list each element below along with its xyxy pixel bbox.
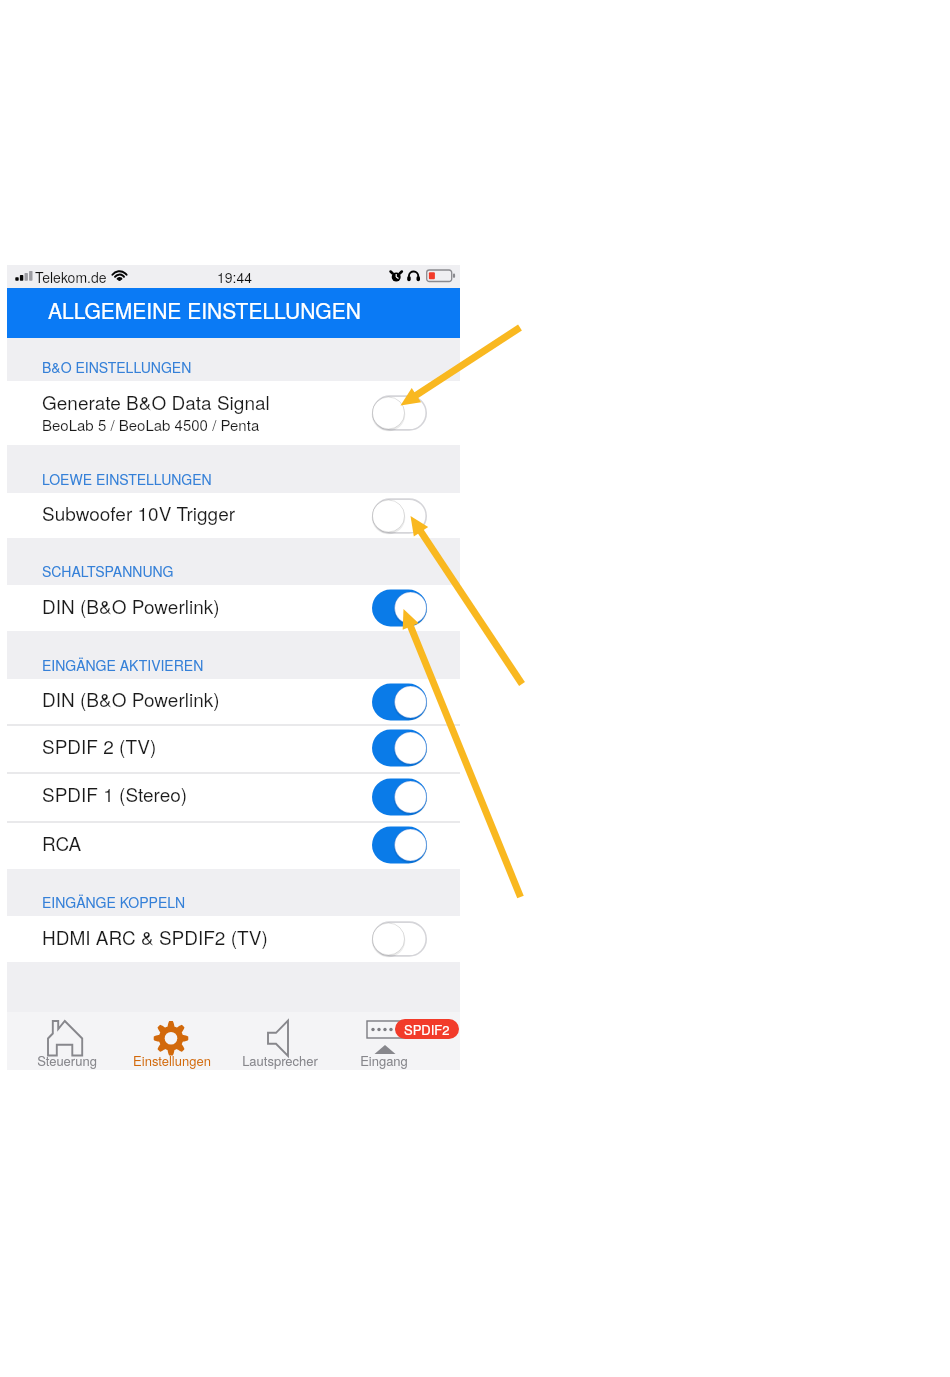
button[interactable]: Switch on (372, 589, 427, 627)
button[interactable]: SPDIF2 (404, 1019, 450, 1039)
staticText: RCA (42, 829, 82, 856)
button[interactable]: DIN (B&O Powerlink) (7, 679, 460, 724)
button[interactable]: Switch on (372, 826, 427, 864)
button[interactable]: Subwoofer 10V Trigger (7, 493, 460, 538)
button[interactable]: Switch on (372, 683, 427, 721)
staticText: SPDIF 2 (TV) (42, 732, 157, 759)
staticText: Eingang (324, 1051, 444, 1070)
button[interactable]: Eingang (337, 1012, 459, 1070)
button[interactable]: ALLGEMEINE EINSTELLUNGEN (7, 288, 460, 338)
staticText: Generate B&O Data Signal (42, 388, 270, 415)
staticText: SCHALTSPANNUNG (42, 561, 174, 581)
button[interactable]: RCA (7, 821, 460, 869)
staticText: BeoLab 5 / BeoLab 4500 / Penta (42, 414, 260, 435)
staticText: Subwoofer 10V Trigger (42, 499, 236, 526)
staticText: Steuerung (12, 1051, 122, 1070)
button[interactable]: Einstellungen (119, 1012, 223, 1070)
staticText: EINGÄNGE KOPPELN (42, 892, 186, 912)
button[interactable]: SPDIF 1 (Stereo) (7, 772, 460, 821)
staticText: DIN (B&O Powerlink) (42, 685, 220, 712)
button[interactable]: Generate B&O Data Signal (7, 381, 460, 445)
staticText: SPDIF 1 (Stereo) (42, 780, 188, 807)
button[interactable]: Switch on (372, 729, 427, 767)
button[interactable]: HDMI ARC & SPDIF2 (TV) (7, 916, 460, 962)
staticText: EINGÄNGE AKTIVIEREN (42, 655, 204, 675)
staticText: Telekom.de (35, 267, 107, 287)
button[interactable]: Steuerung (9, 1012, 119, 1070)
staticText: ALLGEMEINE EINSTELLUNGEN (48, 295, 361, 325)
staticText: DIN (B&O Powerlink) (42, 592, 220, 619)
button[interactable]: Switch off (372, 920, 427, 958)
button[interactable]: SPDIF 2 (TV) (7, 724, 460, 772)
button[interactable]: DIN (B&O Powerlink) (7, 585, 460, 631)
staticText: B&O EINSTELLUNGEN (42, 357, 192, 377)
staticText: SPDIF2 (404, 1020, 450, 1039)
staticText: 19:44 (217, 267, 253, 287)
staticText: HDMI ARC & SPDIF2 (TV) (42, 923, 268, 950)
staticText: Lautsprecher (225, 1051, 335, 1070)
button[interactable]: Lautsprecher (223, 1012, 333, 1070)
button[interactable]: Switch off (372, 497, 427, 535)
staticText: Einstellungen (120, 1051, 224, 1070)
button[interactable]: Switch on (372, 778, 427, 816)
button[interactable]: Switch off (372, 394, 427, 432)
staticText: LOEWE EINSTELLUNGEN (42, 469, 212, 489)
